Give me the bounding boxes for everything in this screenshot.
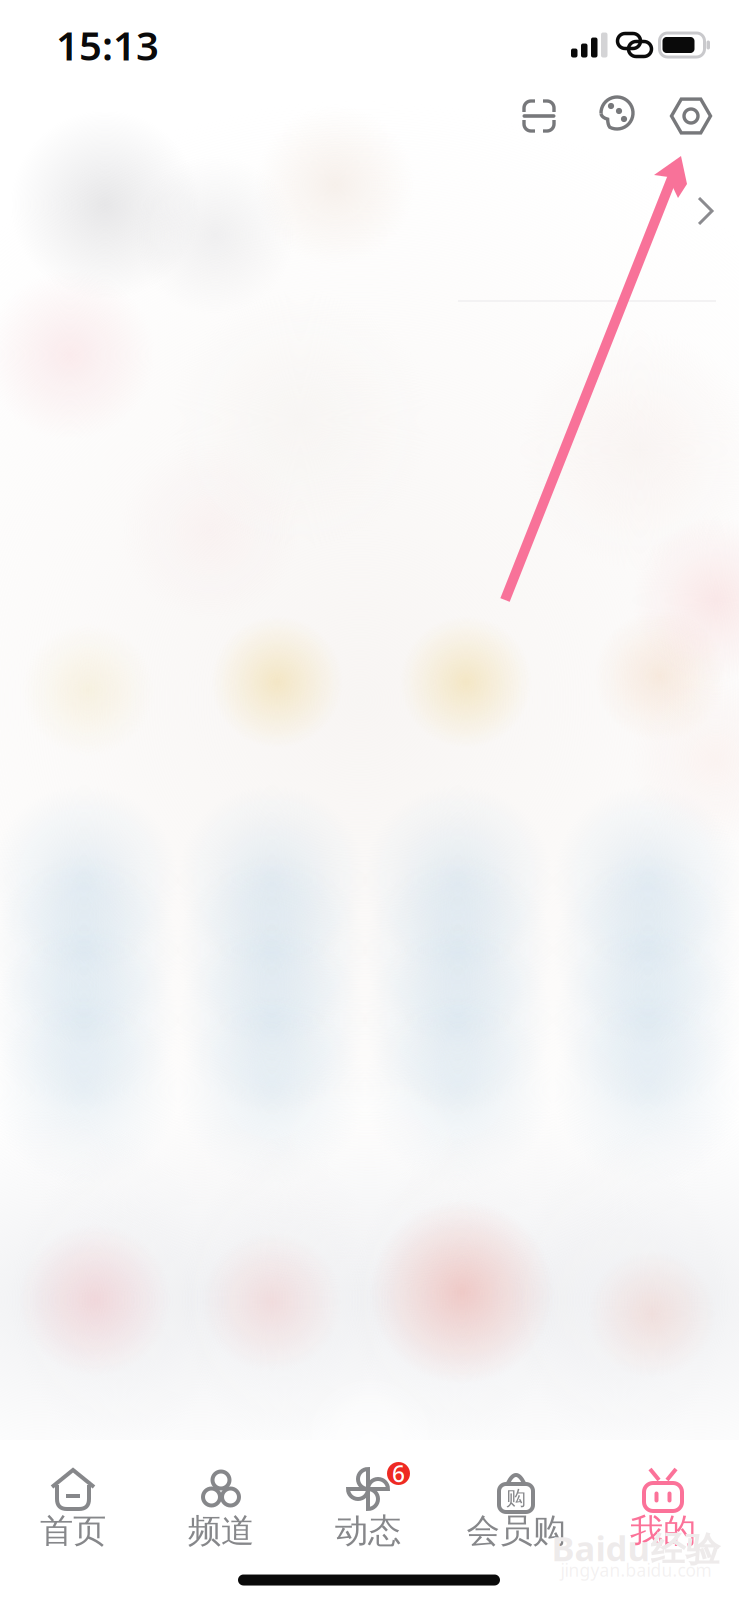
button[interactable]: 购: [446, 1460, 586, 1566]
staticText: 6: [392, 1458, 405, 1488]
button[interactable]: Scan: [507, 84, 571, 148]
staticText: 会员购: [466, 1510, 565, 1551]
staticText: jingyan.baidu.com: [560, 1558, 711, 1581]
staticText: 频道: [188, 1510, 254, 1551]
button[interactable]: Theme: [584, 83, 648, 147]
staticText: 我的: [630, 1510, 696, 1551]
staticText: 首页: [40, 1510, 106, 1551]
button[interactable]: 频道: [151, 1460, 291, 1566]
button[interactable]: 动态: [298, 1460, 438, 1566]
staticText: 购: [506, 1486, 526, 1510]
button[interactable]: 我的: [593, 1460, 733, 1566]
button[interactable]: More: [681, 187, 729, 235]
staticText: 15:13: [56, 18, 159, 71]
staticText: 动态: [335, 1510, 401, 1551]
button[interactable]: Settings: [659, 84, 723, 148]
staticText: Baidu经验: [551, 1525, 720, 1571]
button[interactable]: 首页: [3, 1460, 143, 1566]
